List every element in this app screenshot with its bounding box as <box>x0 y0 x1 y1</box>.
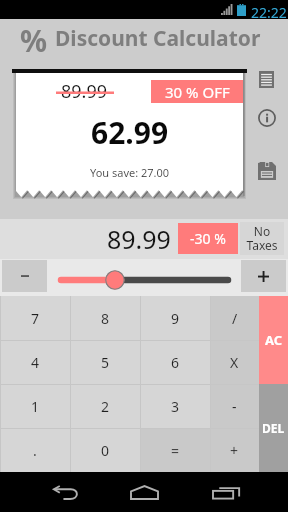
button[interactable]: 7 <box>0 296 70 340</box>
button[interactable]: 1 <box>0 385 70 428</box>
button[interactable]: Home <box>122 477 167 507</box>
staticText: 3 <box>171 397 180 416</box>
staticText: / <box>232 309 238 328</box>
button[interactable]: X <box>210 341 259 384</box>
button[interactable]: Recents <box>203 477 248 507</box>
staticText: % <box>20 20 48 59</box>
staticText: X <box>230 353 239 372</box>
button[interactable]: Info <box>251 102 282 133</box>
staticText: + <box>230 441 239 460</box>
button[interactable]: = <box>140 429 210 472</box>
staticText: DEL <box>262 420 285 436</box>
button[interactable]: 4 <box>0 341 70 384</box>
staticText: 2 <box>101 397 110 416</box>
button[interactable]: + <box>210 429 259 472</box>
staticText: . <box>33 441 37 460</box>
staticText: 89.99 <box>61 79 108 104</box>
staticText: 7 <box>31 309 40 328</box>
button[interactable]: AC <box>259 296 288 384</box>
staticText: 30 % OFF <box>165 82 230 102</box>
staticText: 62.99 <box>91 112 169 153</box>
button[interactable]: 5 <box>70 341 140 384</box>
staticText: -30 % <box>190 229 226 248</box>
button[interactable]: 8 <box>70 296 140 340</box>
staticText: = <box>171 441 180 460</box>
staticText: 22:22 <box>251 3 287 22</box>
button[interactable]: - <box>210 385 259 428</box>
staticText: 6 <box>171 353 180 372</box>
staticText: 9 <box>171 309 180 328</box>
button[interactable]: 3 <box>140 385 210 428</box>
button[interactable]: 0 <box>70 429 140 472</box>
button[interactable]: Back <box>42 477 87 507</box>
staticText: 8 <box>101 309 110 328</box>
button[interactable]: DEL <box>259 384 288 472</box>
staticText: 0 <box>101 441 110 460</box>
staticText: No Taxes <box>246 223 278 254</box>
staticText: 1 <box>31 397 40 416</box>
button[interactable]: / <box>210 296 259 340</box>
button[interactable]: History <box>251 64 282 95</box>
staticText: - <box>232 397 237 416</box>
staticText: 4 <box>31 353 40 372</box>
button[interactable]: 6 <box>140 341 210 384</box>
button[interactable]: -30 % <box>178 223 238 254</box>
staticText: Discount Calculator <box>55 24 261 53</box>
button[interactable]: . <box>0 429 70 472</box>
button[interactable]: No Taxes <box>240 222 284 255</box>
staticText: 89.99 <box>107 222 171 256</box>
button[interactable]: Decrease <box>2 260 47 292</box>
staticText: AC <box>265 331 283 349</box>
button[interactable]: 2 <box>70 385 140 428</box>
button[interactable]: 9 <box>140 296 210 340</box>
button[interactable]: Save <box>251 155 282 186</box>
staticText: 5 <box>101 353 110 372</box>
staticText: You save: 27.00 <box>90 165 170 180</box>
button[interactable]: Increase <box>241 260 286 292</box>
button[interactable]: 89.99 <box>0 219 178 259</box>
button[interactable]: Discount slider <box>55 259 235 296</box>
